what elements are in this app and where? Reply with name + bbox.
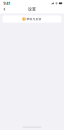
button[interactable]: 帮助与反馈 (3, 15, 61, 23)
staticText: 9:41 (3, 1, 10, 6)
staticText: 帮助与反馈 (27, 17, 42, 21)
button[interactable]: Back (2, 6, 7, 12)
staticText: 设置 (28, 7, 36, 12)
